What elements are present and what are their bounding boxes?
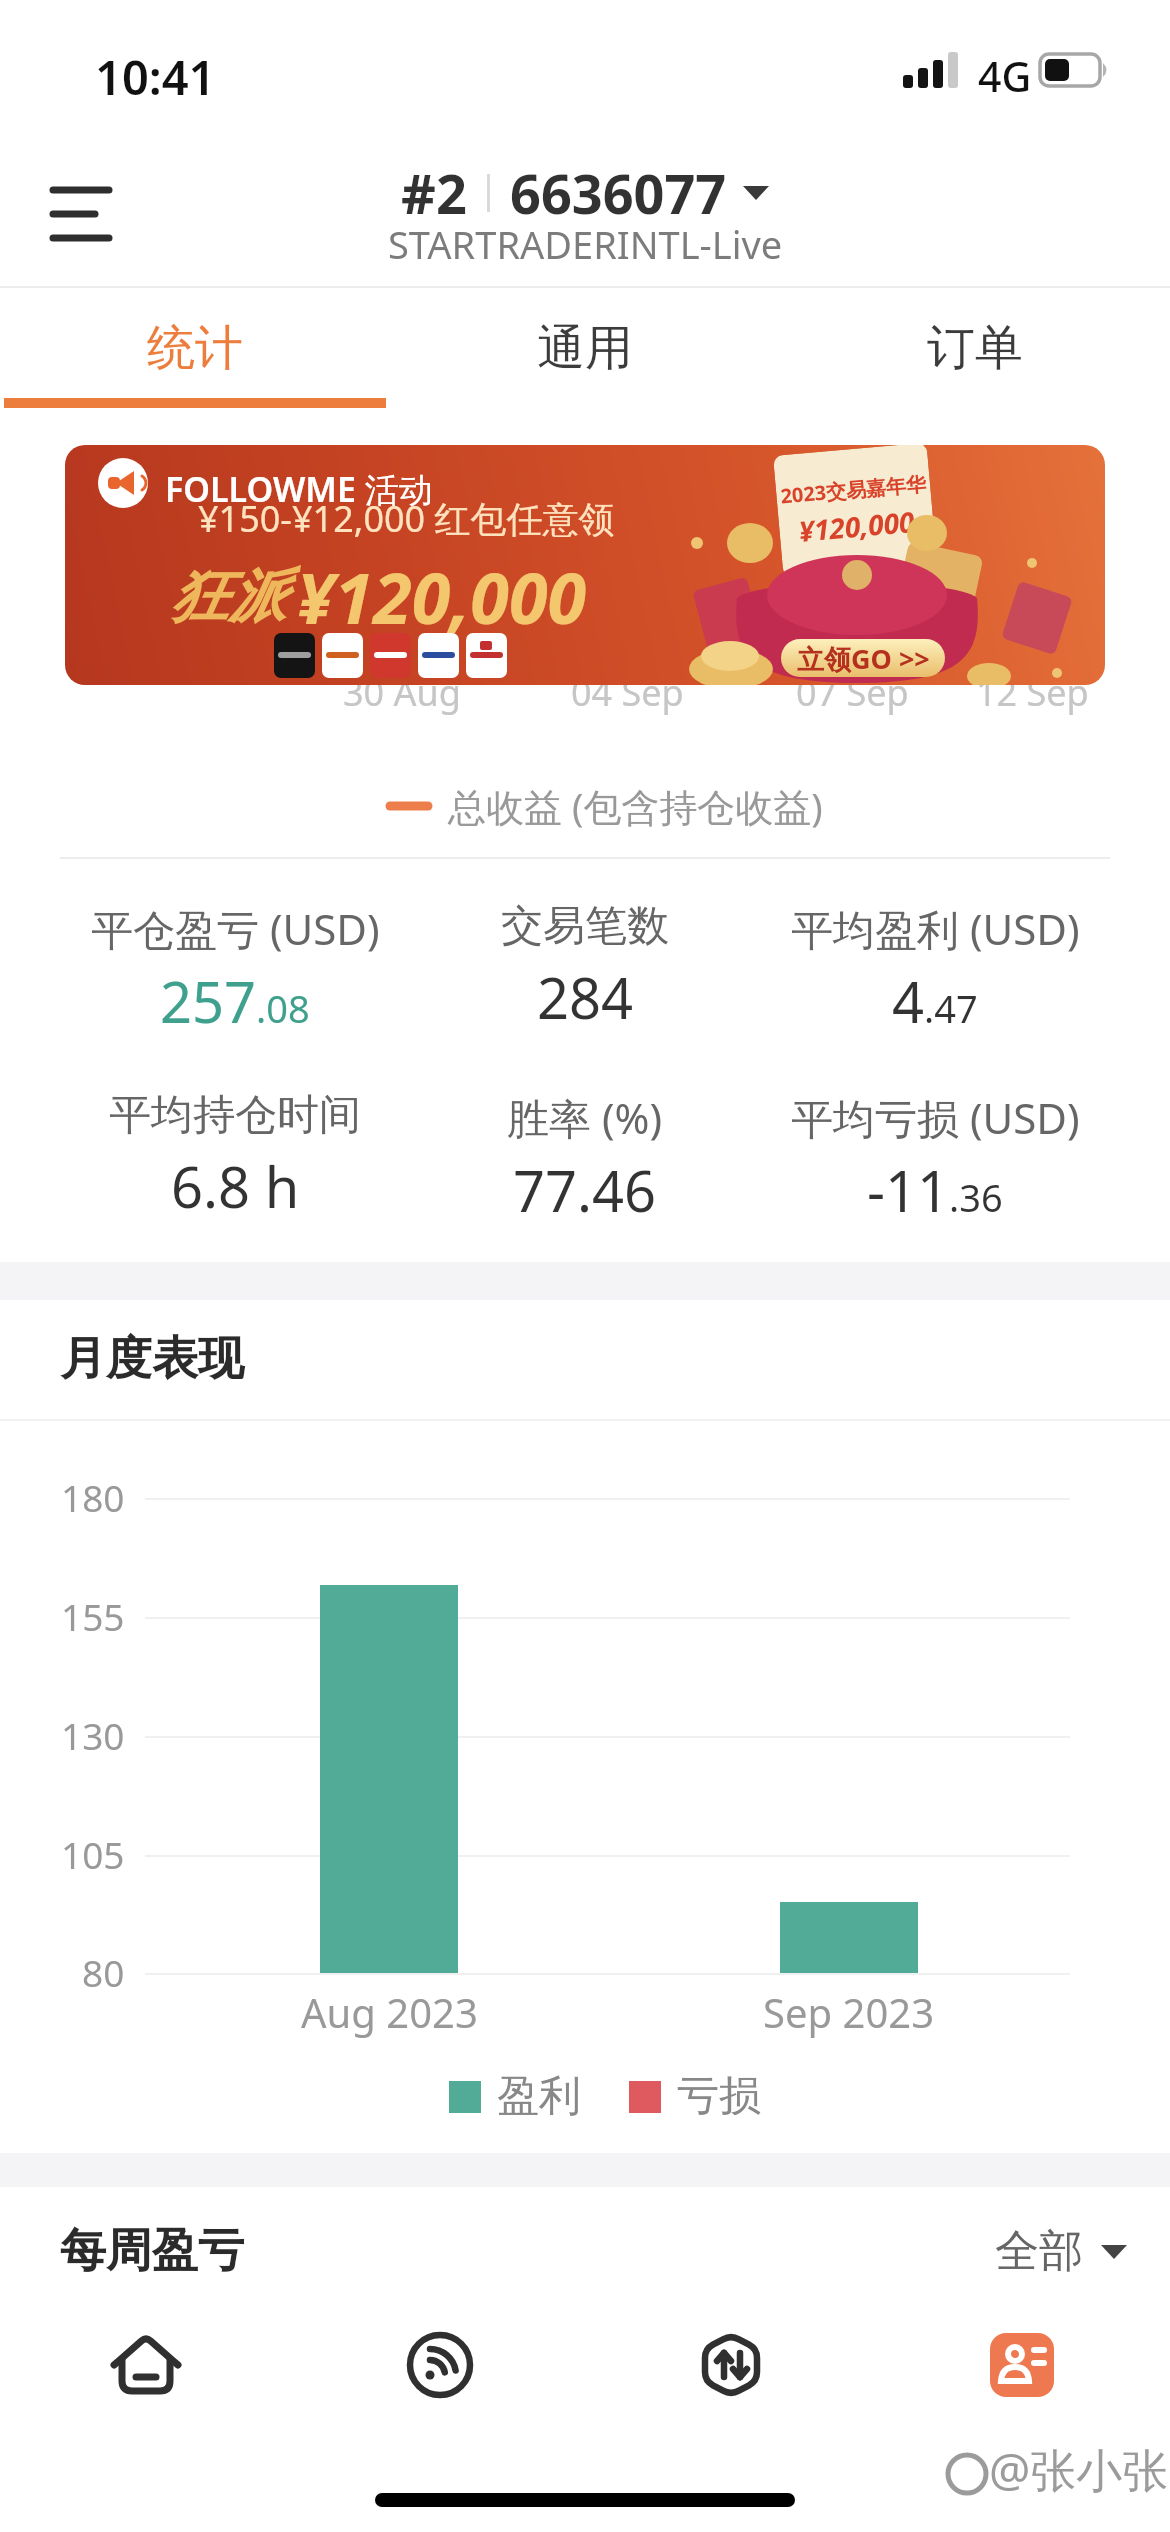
staticText: 12 Sep bbox=[976, 668, 1089, 717]
staticText: 通用 bbox=[537, 318, 633, 378]
staticText: ¥120,000 bbox=[797, 502, 917, 550]
staticText: Sep 2023 bbox=[763, 1985, 935, 2039]
staticText: 04 Sep bbox=[571, 668, 684, 717]
staticText: STARTRADERINTL-Live bbox=[388, 218, 783, 270]
staticText: 77.46 bbox=[513, 1152, 657, 1228]
staticText: 月度表现 bbox=[60, 1330, 244, 1388]
staticText: 每周盈亏 bbox=[60, 2222, 244, 2280]
staticText: 130 bbox=[61, 1710, 125, 1760]
staticText: 257.08 bbox=[160, 963, 310, 1039]
staticText: 2023交易嘉年华 bbox=[779, 470, 927, 509]
staticText: 4.47 bbox=[892, 963, 978, 1039]
staticText: 平均持仓时间 bbox=[109, 1089, 361, 1142]
staticText: 155 bbox=[61, 1591, 125, 1641]
button[interactable]: #2 bbox=[401, 156, 769, 230]
staticText: @张小张 bbox=[989, 2438, 1169, 2501]
staticText: 180 bbox=[61, 1472, 125, 1522]
staticText: 10:41 bbox=[95, 45, 216, 109]
staticText: Aug 2023 bbox=[301, 1985, 478, 2039]
button[interactable] bbox=[697, 2331, 765, 2399]
staticText: 平均盈利 (USD) bbox=[791, 900, 1080, 957]
button[interactable]: 统计 bbox=[0, 288, 390, 408]
button[interactable]: FOLLOWME 活动 bbox=[65, 445, 1105, 685]
staticText: 30 Aug bbox=[343, 668, 461, 717]
staticText: 80 bbox=[82, 1947, 125, 1997]
staticText: ¥120,000 bbox=[296, 549, 587, 644]
button[interactable] bbox=[110, 2329, 182, 2401]
staticText: 105 bbox=[61, 1829, 125, 1879]
staticText: 总收益 (包含持仓收益) bbox=[448, 780, 823, 832]
staticText: 6636077 bbox=[510, 156, 727, 230]
staticText: 交易笔数 bbox=[501, 900, 669, 953]
button[interactable]: 立领GO >> bbox=[781, 639, 945, 677]
staticText: 4G bbox=[978, 48, 1032, 104]
button[interactable] bbox=[51, 186, 113, 242]
button[interactable]: 全部 bbox=[995, 2224, 1127, 2279]
staticText: 立领GO >> bbox=[797, 640, 930, 677]
button[interactable]: 订单 bbox=[780, 288, 1170, 408]
staticText: 盈利 bbox=[497, 2070, 581, 2123]
staticText: 07 Sep bbox=[796, 668, 909, 717]
staticText: 胜率 (%) bbox=[507, 1089, 663, 1146]
staticText: 统计 bbox=[147, 318, 243, 378]
staticText: ¥150-¥12,000 红包任意领 bbox=[198, 494, 615, 543]
staticText: 284 bbox=[537, 959, 634, 1035]
button[interactable] bbox=[990, 2333, 1054, 2397]
staticText: 平仓盈亏 (USD) bbox=[91, 900, 380, 957]
staticText: 6.8 h bbox=[171, 1148, 300, 1224]
staticText: 平均亏损 (USD) bbox=[791, 1089, 1080, 1146]
staticText: FOLLOWME 活动 bbox=[165, 466, 433, 512]
staticText: #2 bbox=[401, 156, 467, 230]
staticText: 亏损 bbox=[677, 2070, 761, 2123]
button[interactable] bbox=[406, 2331, 474, 2399]
button[interactable]: 通用 bbox=[390, 288, 780, 408]
staticText: 狂派 bbox=[170, 560, 286, 633]
staticText: -11.36 bbox=[867, 1152, 1003, 1228]
staticText: 全部 bbox=[995, 2224, 1083, 2279]
staticText: 订单 bbox=[927, 318, 1023, 378]
